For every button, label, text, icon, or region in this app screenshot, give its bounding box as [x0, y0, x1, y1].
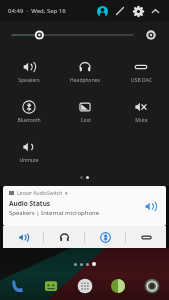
- staticText: Audio Status: [9, 199, 51, 208]
- button[interactable]: All apps: [74, 275, 96, 297]
- button[interactable]: USB DAC: [113, 52, 169, 92]
- button[interactable]: Speaker: [3, 226, 43, 248]
- staticText: USB DAC: [131, 77, 152, 84]
- button[interactable]: USB DAC: [126, 226, 166, 248]
- button[interactable]: Cast: [57, 92, 113, 132]
- button[interactable]: Bluetooth: [0, 92, 57, 132]
- staticText: Speakers | Internal microphone: [9, 209, 100, 217]
- button[interactable]: [10, 25, 135, 45]
- button[interactable]: Speakers: [0, 52, 57, 92]
- button[interactable]: Unmute: [0, 132, 57, 172]
- button[interactable]: User: [93, 2, 111, 20]
- staticText: Bluetooth: [17, 117, 41, 124]
- button[interactable]: Settings: [129, 2, 147, 20]
- staticText: Cast: [80, 117, 91, 124]
- button[interactable]: Mute: [113, 92, 169, 132]
- button[interactable]: Theme: [107, 275, 129, 297]
- staticText: 04:49 · Wed, Sep 16: [8, 7, 66, 15]
- button[interactable]: Bluetooth: [85, 226, 125, 248]
- staticText: Headphones: [70, 77, 100, 84]
- button[interactable]: Collapse: [147, 3, 163, 19]
- button[interactable]: Lesser AudioSwitch ▾: [3, 186, 166, 226]
- button[interactable]: Messages: [40, 275, 62, 297]
- button[interactable]: Headphones: [57, 52, 113, 92]
- staticText: Unmute: [19, 157, 39, 164]
- button[interactable]: Edit: [111, 2, 129, 20]
- button[interactable]: Phone: [6, 275, 28, 297]
- button[interactable]: Camera: [141, 275, 163, 297]
- staticText: Lesser AudioSwitch ▾: [17, 190, 68, 197]
- button[interactable]: Auto brightness: [143, 27, 159, 43]
- button[interactable]: Headphones: [44, 226, 84, 248]
- staticText: Speakers: [18, 77, 40, 84]
- staticText: Mute: [135, 117, 148, 124]
